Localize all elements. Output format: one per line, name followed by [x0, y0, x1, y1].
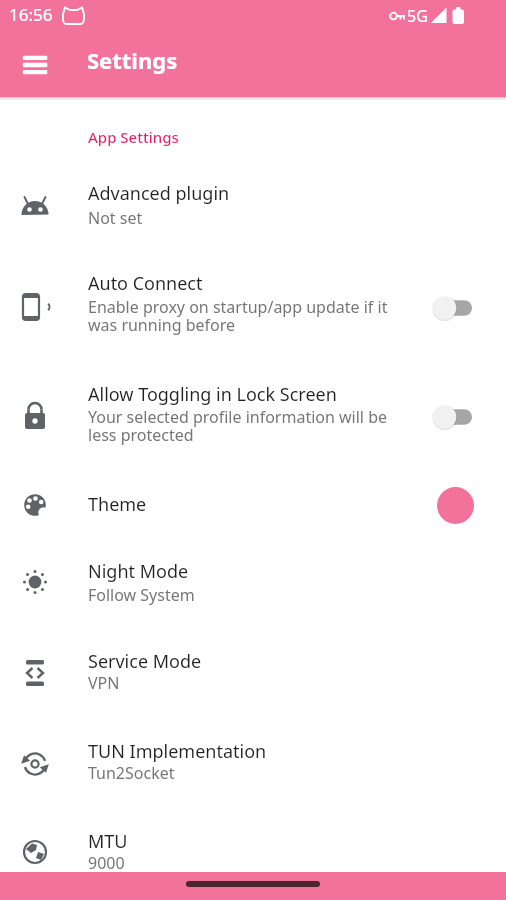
- staticText: 5G: [407, 5, 428, 27]
- staticText: App Settings: [88, 127, 179, 147]
- button[interactable]: [15, 45, 55, 85]
- staticText: 16:56: [9, 3, 53, 26]
- staticText: Tun2Socket: [88, 762, 175, 784]
- button[interactable]: [432, 293, 473, 323]
- button[interactable]: Theme: [0, 470, 506, 541]
- staticText: Not set: [88, 207, 143, 229]
- staticText: Theme: [88, 492, 147, 517]
- button[interactable]: Night Mode: [0, 541, 506, 630]
- staticText: VPN: [88, 672, 120, 694]
- staticText: Enable proxy on startup/app update if it…: [88, 296, 388, 336]
- staticText: Service Mode: [88, 649, 202, 674]
- button[interactable]: Advanced plugin: [0, 158, 506, 246]
- button[interactable]: [437, 487, 474, 524]
- staticText: Settings: [87, 45, 178, 75]
- button[interactable]: TUN Implementation: [0, 720, 506, 810]
- staticText: Night Mode: [88, 559, 189, 584]
- staticText: Auto Connect: [88, 271, 203, 296]
- button[interactable]: Service Mode: [0, 630, 506, 720]
- staticText: Allow Toggling in Lock Screen: [88, 382, 337, 407]
- staticText: Your selected profile information will b…: [88, 406, 388, 446]
- staticText: TUN Implementation: [88, 739, 267, 764]
- staticText: Advanced plugin: [88, 181, 230, 206]
- button[interactable]: Allow Toggling in Lock Screen: [0, 358, 506, 470]
- staticText: MTU: [88, 829, 128, 854]
- staticText: 9000: [88, 852, 125, 874]
- button[interactable]: MTU: [0, 810, 506, 872]
- staticText: Follow System: [88, 584, 195, 606]
- button[interactable]: [432, 402, 473, 432]
- button[interactable]: Auto Connect: [0, 246, 506, 358]
